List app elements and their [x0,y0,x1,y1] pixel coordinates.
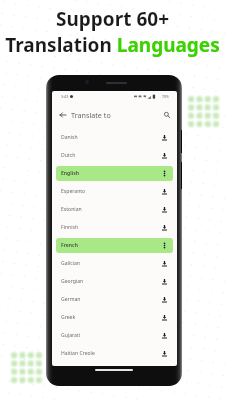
button[interactable]: Finnish [56,220,173,235]
button[interactable]: Back [57,109,68,120]
button[interactable]: Danish [56,130,173,145]
staticText: 70% [162,94,169,99]
button[interactable]: Estonian [56,202,173,217]
staticText: Gujarati [61,332,81,339]
button[interactable]: Gujarati [56,328,173,343]
button[interactable]: Dutch [56,148,173,163]
staticText: French [61,242,78,249]
staticText: German [61,296,81,303]
staticText: Translate to [71,110,111,120]
staticText: Support 60+ [56,6,169,32]
button[interactable]: Galician [56,256,173,271]
button[interactable]: Esperanto [56,184,173,199]
staticText: 3:43 [61,94,69,99]
staticText: Dutch [61,152,76,159]
staticText: Greek [61,314,76,321]
button[interactable]: Georgian [56,274,173,289]
button[interactable]: Greek [56,310,173,325]
staticText: Haitian Creole [61,350,95,357]
staticText: Danish [61,134,78,141]
staticText: Georgian [61,278,84,285]
staticText: English [61,170,79,177]
staticText: Galician [61,260,80,267]
staticText: Translation Languages [5,32,220,58]
button[interactable]: English [56,166,173,181]
staticText: Finnish [61,224,79,231]
staticText: Estonian [61,206,82,213]
button[interactable]: Search [161,109,172,120]
button[interactable]: French [56,238,173,253]
staticText: Esperanto [61,188,86,195]
button[interactable]: German [56,292,173,307]
button[interactable]: Haitian Creole [56,346,173,361]
